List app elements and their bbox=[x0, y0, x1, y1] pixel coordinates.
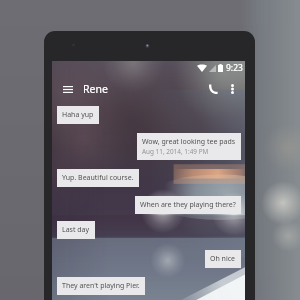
staticText: Last day bbox=[62, 225, 90, 235]
button[interactable]: Haha yup bbox=[57, 106, 99, 124]
staticText: Yup. Beautiful course. bbox=[62, 173, 134, 183]
button[interactable]: Menu bbox=[61, 80, 74, 98]
button[interactable]: Wow, great looking tee pads bbox=[137, 133, 241, 160]
staticText: When are they playing there? bbox=[140, 200, 236, 210]
staticText: Haha yup bbox=[62, 110, 94, 120]
staticText: Aug 11, 2014, 1:49 PM bbox=[142, 147, 209, 156]
staticText: Oh nice bbox=[210, 254, 236, 264]
staticText: Rene bbox=[83, 82, 108, 96]
staticText: Wow, great looking tee pads bbox=[142, 137, 236, 147]
button[interactable]: Last day bbox=[57, 221, 95, 239]
staticText: 9:23 bbox=[226, 62, 243, 74]
staticText: They aren't playing Pier. bbox=[62, 281, 140, 291]
button[interactable]: Yup. Beautiful course. bbox=[57, 169, 139, 187]
button[interactable]: More options bbox=[227, 80, 237, 98]
button[interactable]: They aren't playing Pier. bbox=[57, 277, 145, 295]
button[interactable]: Call bbox=[205, 80, 221, 98]
button[interactable]: When are they playing there? bbox=[135, 196, 241, 214]
button[interactable]: Oh nice bbox=[205, 250, 241, 268]
